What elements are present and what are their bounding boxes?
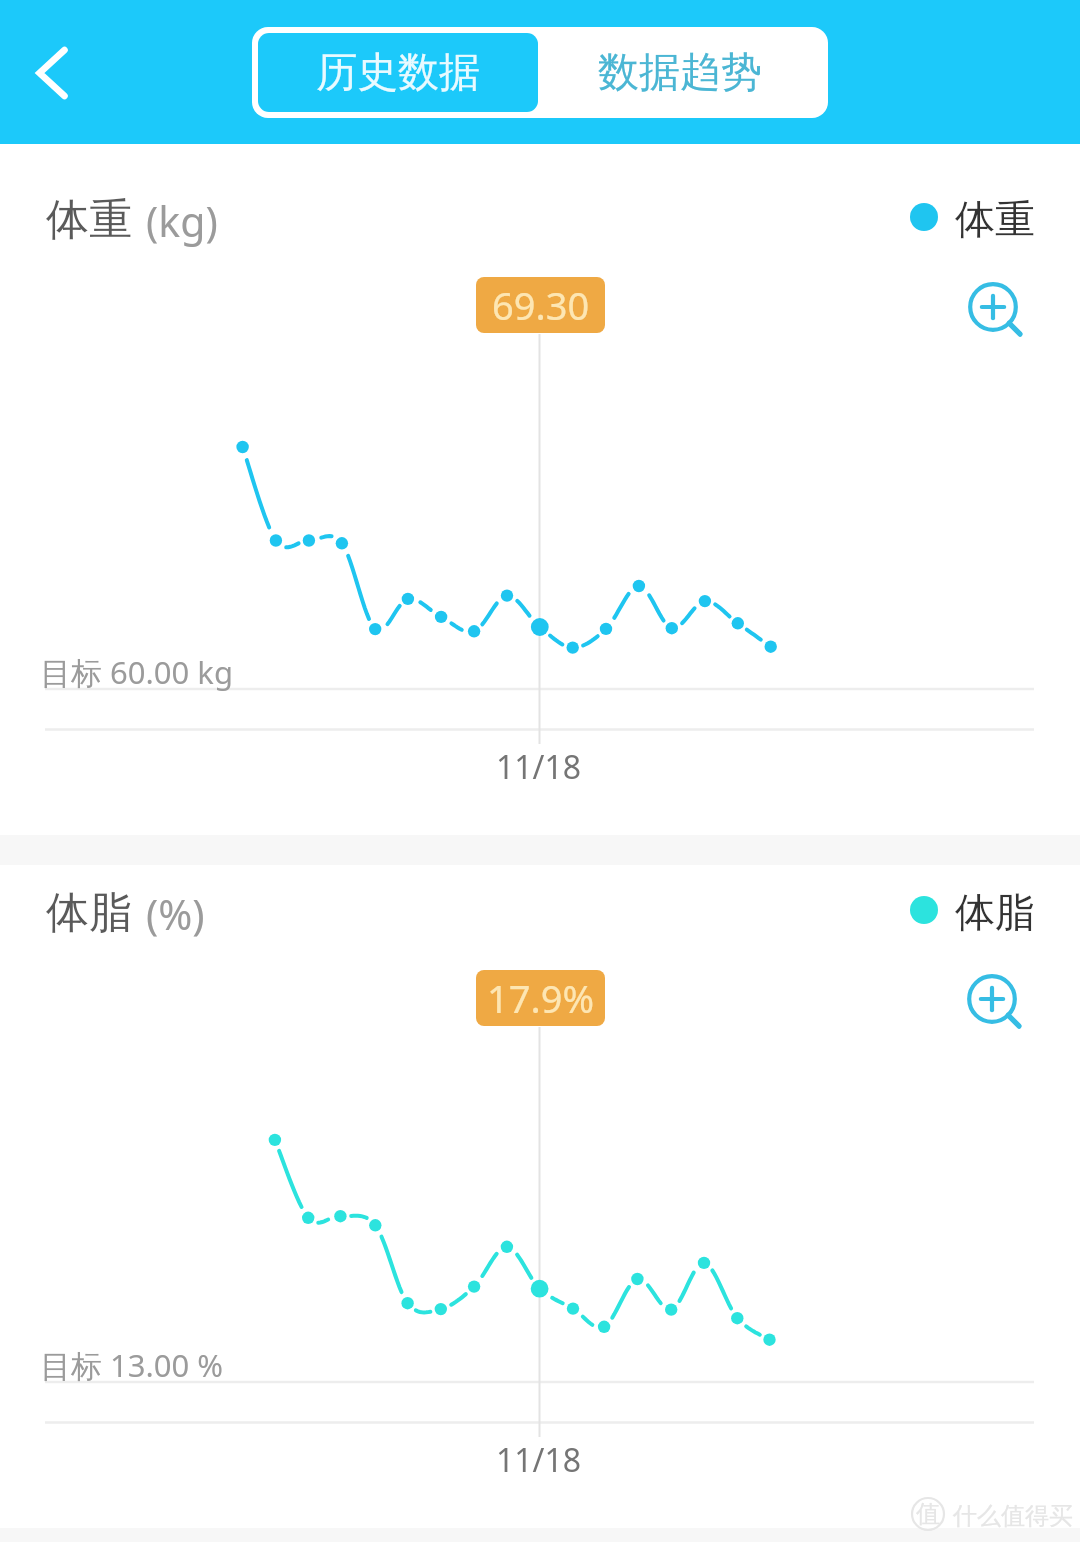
staticText: 体脂 [46,886,132,940]
staticText: 目标 13.00 % [40,1344,224,1386]
staticText: 体脂 [955,887,1035,937]
staticText: 17.9% [487,972,594,1024]
button[interactable]: 历史数据 [258,33,538,112]
staticText: 体重 [46,193,132,247]
staticText: 体重 [955,194,1035,244]
staticText: 什么值得买 [953,1501,1073,1531]
staticText: 历史数据 [316,47,480,99]
staticText: (%) [146,886,205,942]
staticText: (kg) [146,193,218,249]
staticText: 数据趋势 [598,47,762,99]
staticText: 目标 60.00 kg [40,651,233,693]
button[interactable]: Zoom in [949,263,1037,351]
button[interactable]: Back [0,18,104,122]
button[interactable]: Zoom in [948,955,1036,1043]
staticText: 69.30 [492,279,590,331]
button[interactable]: 数据趋势 [538,33,822,112]
staticText: 11/18 [496,745,582,789]
staticText: 11/18 [496,1438,582,1482]
staticText: 值 [916,1499,940,1529]
